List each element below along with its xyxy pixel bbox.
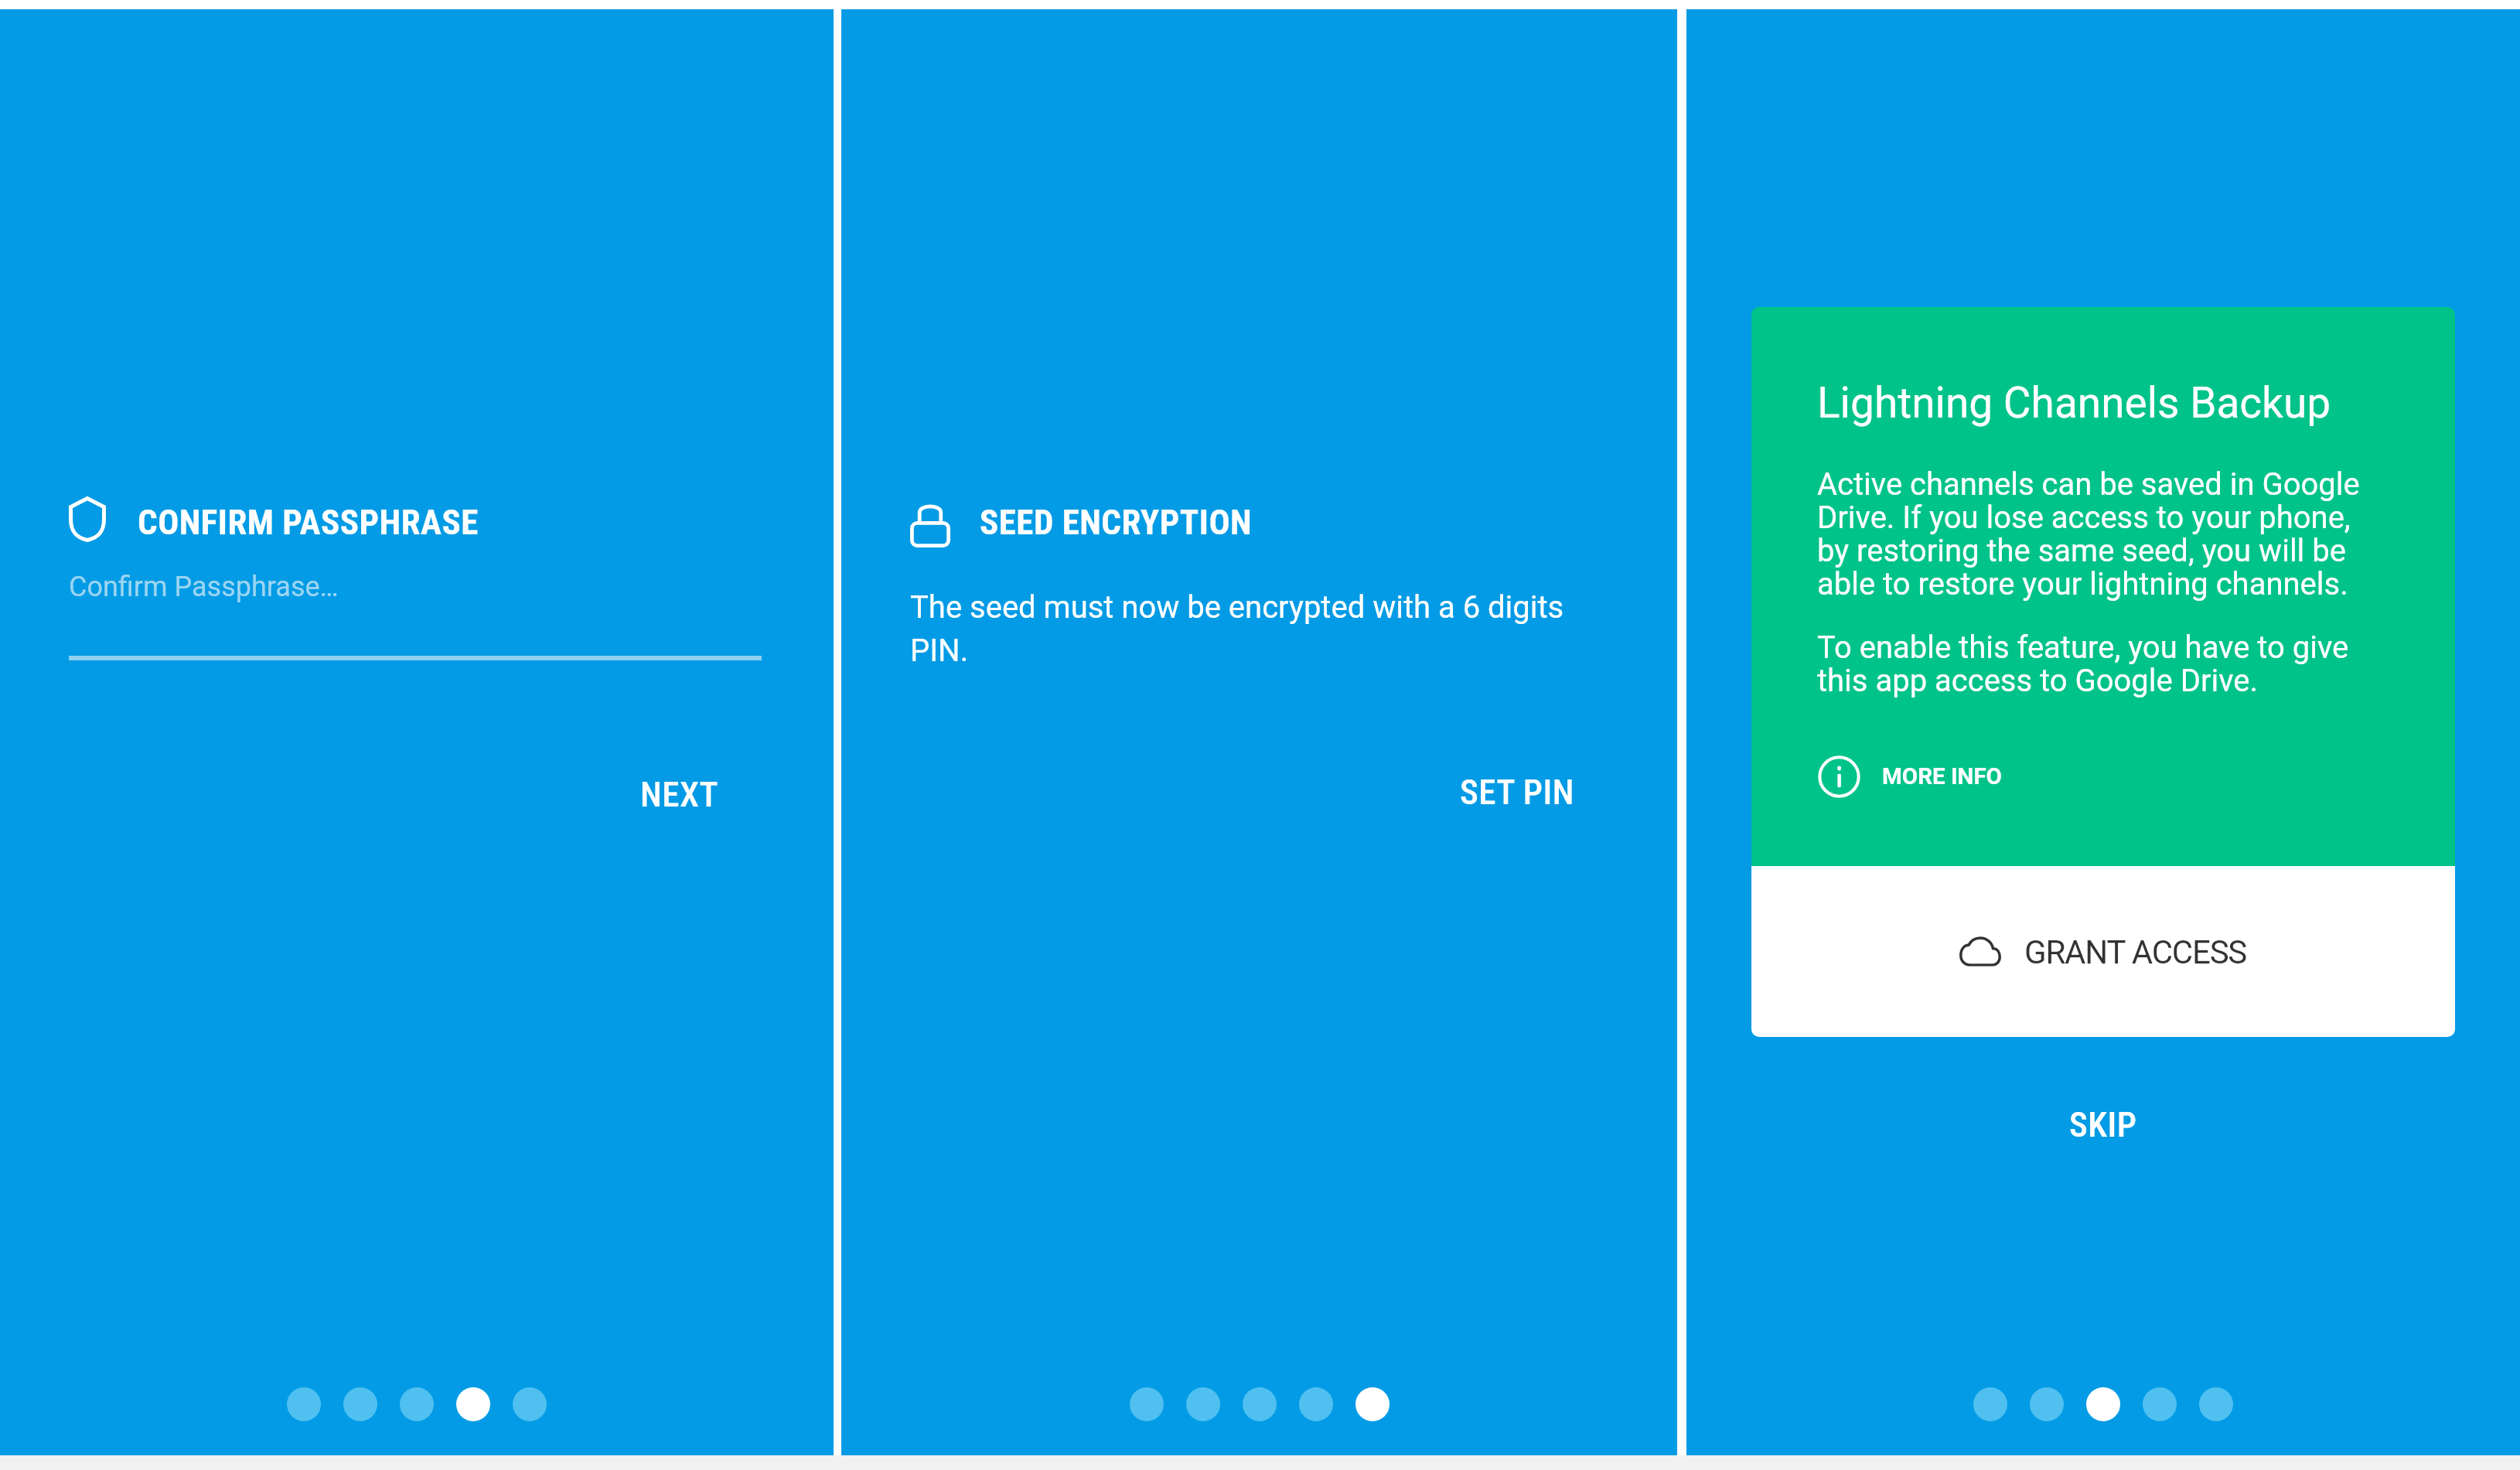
staticText: GRANT ACCESS: [2024, 933, 2247, 971]
button[interactable]: Go to page 1: [1973, 1387, 2007, 1421]
button[interactable]: Go to page 4: [2143, 1387, 2177, 1421]
button[interactable]: Go to page 5: [1355, 1387, 1390, 1421]
staticText: To enable this feature, you have to give…: [1817, 629, 2372, 699]
staticText: The seed must now be encrypted with a 6 …: [910, 589, 1605, 669]
button[interactable]: Confirm passphrase input: [69, 571, 762, 660]
button[interactable]: NEXT: [596, 762, 762, 827]
button[interactable]: Go to page 4: [456, 1387, 490, 1421]
button[interactable]: Go to page 5: [2199, 1387, 2233, 1421]
button[interactable]: Go to page 2: [2030, 1387, 2064, 1421]
staticText: SKIP: [2069, 1104, 2137, 1145]
staticText: CONFIRM PASSPHRASE: [138, 502, 479, 543]
button[interactable]: Go to page 3: [400, 1387, 434, 1421]
button[interactable]: Go to page 5: [513, 1387, 547, 1421]
button[interactable]: SKIP: [2055, 1093, 2151, 1156]
button[interactable]: Go to page 3: [2086, 1387, 2120, 1421]
button[interactable]: Go to page 2: [1186, 1387, 1220, 1421]
button[interactable]: Go to page 1: [1130, 1387, 1164, 1421]
button[interactable]: SET PIN: [1429, 759, 1605, 825]
button[interactable]: Go to page 1: [287, 1387, 321, 1421]
staticText: SEED ENCRYPTION: [980, 502, 1253, 543]
staticText: Lightning Channels Backup: [1817, 378, 2331, 428]
staticText: NEXT: [640, 774, 718, 815]
button[interactable]: GRANT ACCESS: [1751, 866, 2455, 1037]
button[interactable]: Go to page 4: [1299, 1387, 1333, 1421]
button[interactable]: Go to page 2: [343, 1387, 377, 1421]
staticText: MORE INFO: [1882, 763, 2002, 790]
button[interactable]: MORE INFO: [1817, 755, 2002, 799]
staticText: Active channels can be saved in Google D…: [1817, 466, 2372, 602]
staticText: SET PIN: [1460, 772, 1574, 813]
staticText: Confirm Passphrase…: [69, 571, 339, 603]
button[interactable]: Go to page 3: [1243, 1387, 1277, 1421]
